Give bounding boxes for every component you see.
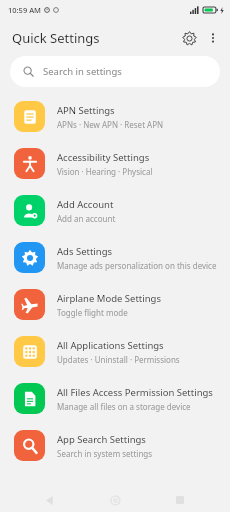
- staticText: Toggle flight mode: [57, 307, 128, 318]
- button[interactable]: All Applications Settings: [0, 328, 230, 375]
- button[interactable]: APN Settings: [0, 93, 230, 140]
- button[interactable]: Airplane Mode Settings: [0, 281, 230, 328]
- staticText: Add an account: [57, 213, 116, 224]
- staticText: 10:59 AM: [8, 5, 41, 15]
- staticText: All Applications Settings: [57, 339, 164, 352]
- staticText: Airplane Mode Settings: [57, 292, 161, 305]
- staticText: Search in system settings: [57, 448, 153, 459]
- button[interactable]: Home: [100, 488, 130, 512]
- button[interactable]: Back: [35, 488, 65, 512]
- staticText: APN Settings: [57, 104, 115, 117]
- button[interactable]: App Search Settings: [0, 422, 230, 469]
- staticText: Manage ads personalization on this devic…: [57, 260, 217, 271]
- staticText: Manage all files on a storage device: [57, 401, 191, 412]
- staticText: Updates · Uninstall · Permissions: [57, 354, 180, 365]
- button[interactable]: Search in settings: [10, 56, 220, 87]
- staticText: Accessibility Settings: [57, 151, 150, 164]
- button[interactable]: Recents: [165, 488, 195, 512]
- button[interactable]: Add Account: [0, 187, 230, 234]
- staticText: Add Account: [57, 198, 114, 211]
- button[interactable]: Accessibility Settings: [0, 140, 230, 187]
- staticText: All Files Access Permission Settings: [57, 386, 213, 399]
- button[interactable]: Settings: [176, 25, 202, 51]
- staticText: Vision · Hearing · Physical: [57, 166, 153, 177]
- staticText: Quick Settings: [12, 29, 100, 47]
- staticText: App Search Settings: [57, 433, 146, 446]
- staticText: Search in settings: [43, 65, 122, 78]
- staticText: APNs · New APN · Reset APN: [57, 119, 164, 130]
- button[interactable]: Ads Settings: [0, 234, 230, 281]
- staticText: Ads Settings: [57, 245, 113, 258]
- button[interactable]: More options: [202, 27, 224, 49]
- button[interactable]: All Files Access Permission Settings: [0, 375, 230, 422]
